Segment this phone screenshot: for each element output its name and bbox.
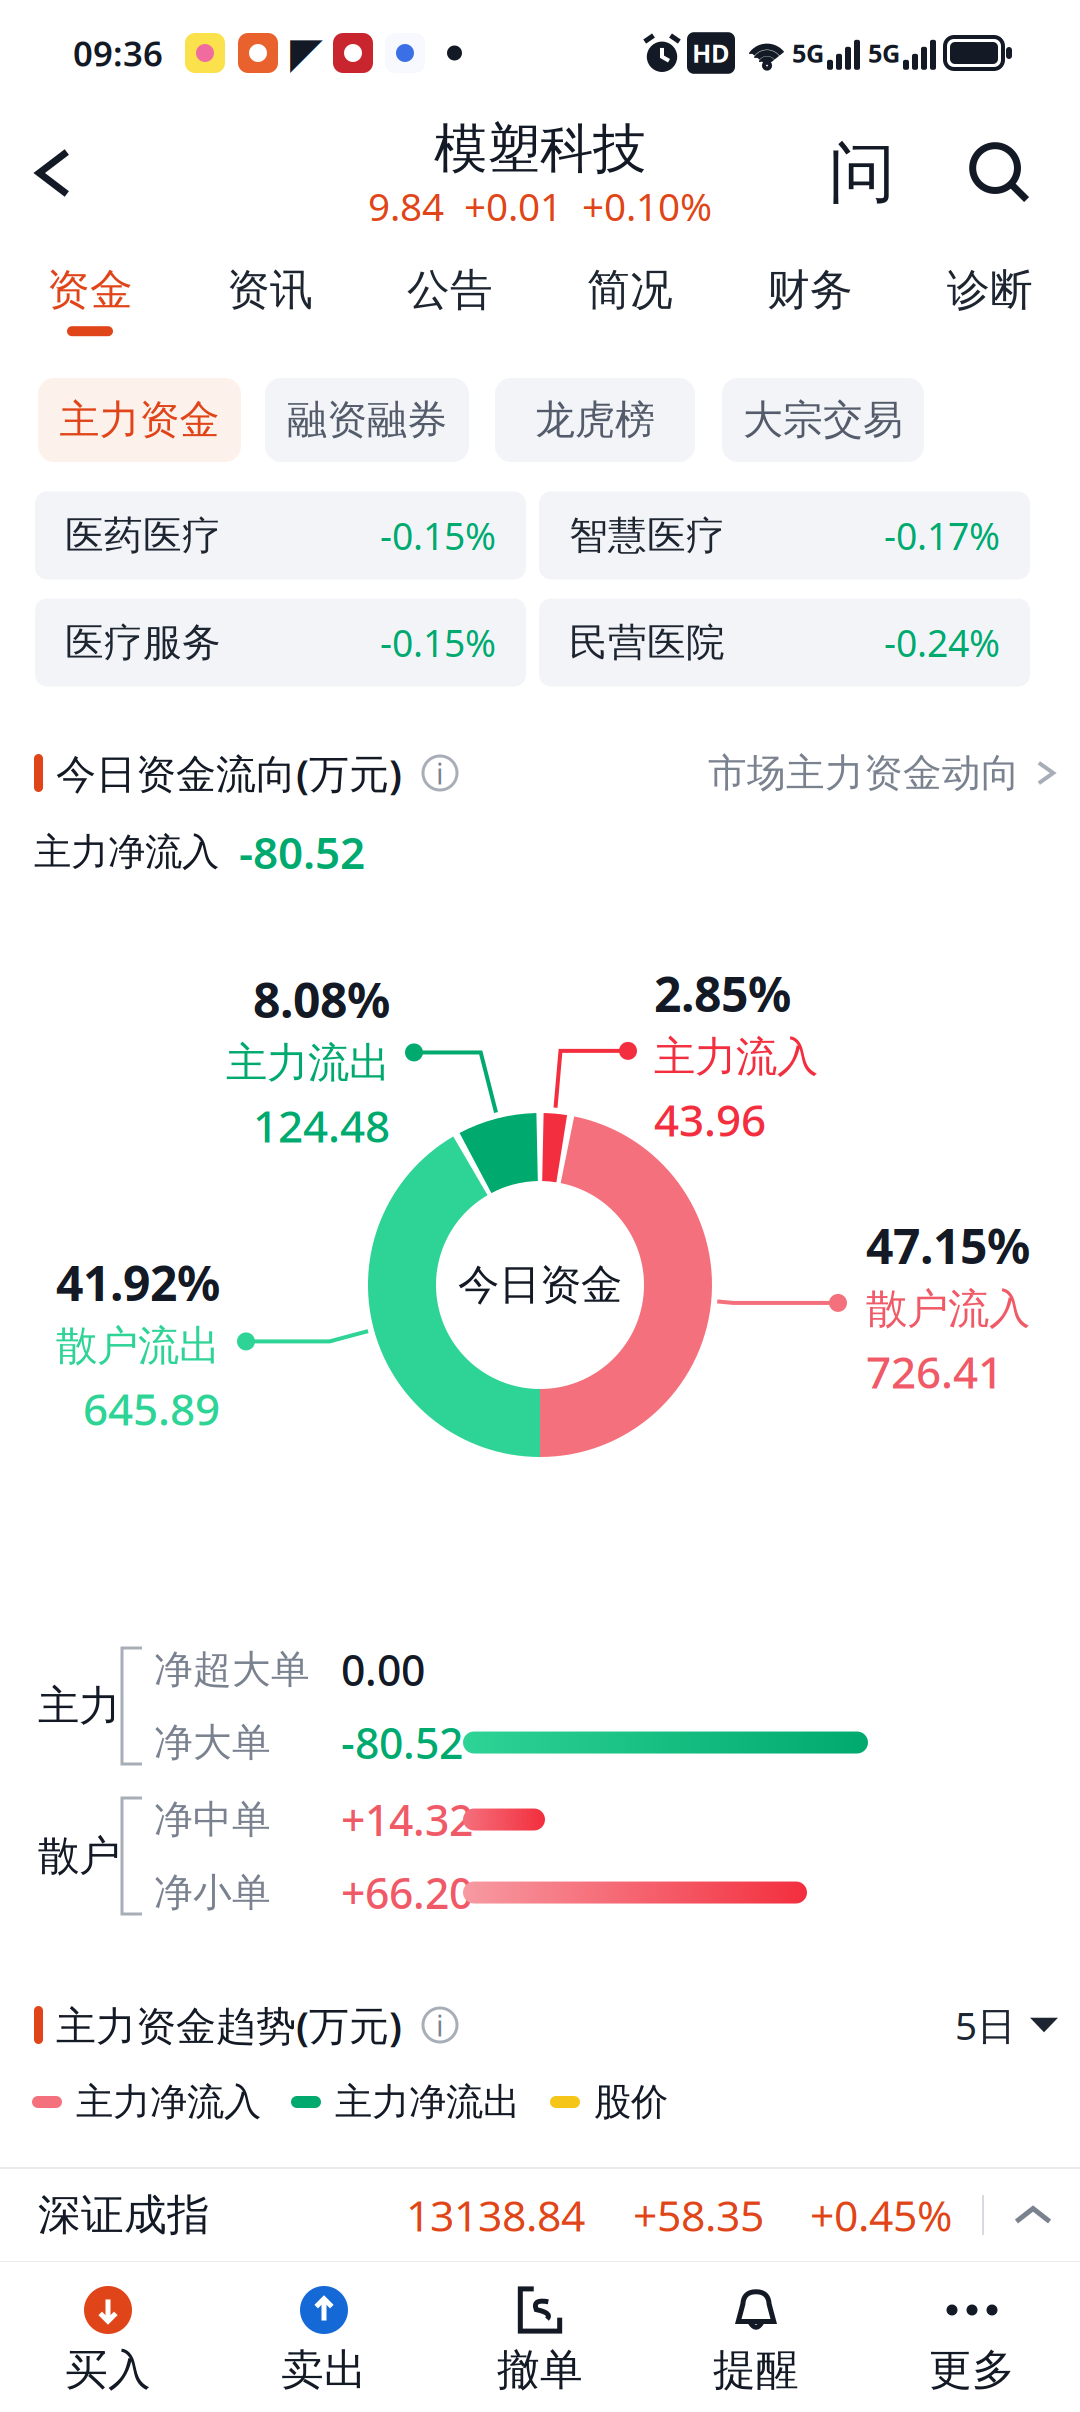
staticText: i: [436, 2005, 444, 2044]
staticText: 净小单: [154, 1869, 271, 1916]
staticText: 诊断: [947, 264, 1033, 316]
staticText: -0.24%: [884, 618, 1000, 667]
staticText: 主力流入: [654, 1032, 818, 1082]
staticText: 主力净流入: [76, 2079, 261, 2125]
button[interactable]: 主力资金: [38, 378, 241, 462]
button[interactable]: Search: [946, 113, 1054, 233]
staticText: 主力流出: [226, 1038, 390, 1088]
staticText: 726.41: [866, 1342, 1003, 1401]
button[interactable]: Back: [4, 112, 102, 234]
staticText: i: [436, 753, 444, 792]
staticText: HD: [692, 36, 730, 70]
staticText: 今日资金流向(万元): [56, 746, 402, 799]
button[interactable]: 公告: [360, 260, 540, 340]
staticText: 资金: [47, 264, 133, 316]
button[interactable]: 财务: [720, 260, 900, 340]
button[interactable]: 更多: [864, 2269, 1080, 2405]
button[interactable]: 深证成指: [0, 2168, 1080, 2262]
staticText: 9.84 +0.01 +0.10%: [368, 180, 712, 232]
staticText: 净大单: [154, 1719, 271, 1766]
staticText: 龙虎榜: [535, 395, 655, 444]
staticText: 散户流出: [56, 1321, 220, 1371]
button[interactable]: 资金: [0, 260, 180, 340]
staticText: 5日: [955, 1999, 1016, 2051]
staticText: 主力资金趋势(万元): [56, 1998, 402, 2051]
staticText: 43.96: [654, 1090, 766, 1149]
staticText: 撤单: [497, 2344, 583, 2396]
staticText: 13138.84: [406, 2187, 585, 2243]
staticText: -0.15%: [380, 511, 496, 560]
staticText: -0.15%: [380, 618, 496, 667]
staticText: 提醒: [713, 2344, 799, 2396]
staticText: 医药医疗: [65, 512, 221, 559]
button[interactable]: Ask: [808, 114, 916, 232]
staticText: 净超大单: [154, 1646, 310, 1693]
staticText: -80.52: [341, 1714, 463, 1771]
staticText: 模塑科技: [434, 116, 646, 182]
staticText: 财务: [767, 264, 853, 316]
staticText: 645.89: [83, 1379, 220, 1438]
staticText: 散户: [38, 1831, 120, 1881]
button[interactable]: 医疗服务: [35, 598, 526, 686]
staticText: 47.15%: [866, 1214, 1030, 1277]
staticText: 公告: [407, 264, 493, 316]
staticText: -80.52: [239, 823, 365, 881]
staticText: -0.17%: [884, 511, 1000, 560]
staticText: 主力净流出: [335, 2079, 520, 2125]
staticText: 124.48: [253, 1096, 390, 1155]
staticText: 民营医院: [569, 619, 725, 666]
staticText: +66.20: [341, 1864, 473, 1921]
button[interactable]: 大宗交易: [722, 378, 924, 462]
staticText: 市场主力资金动向: [708, 749, 1020, 797]
button[interactable]: 医药医疗: [35, 491, 526, 579]
staticText: 大宗交易: [743, 395, 903, 444]
button[interactable]: 民营医院: [539, 598, 1030, 686]
staticText: 5G: [792, 36, 824, 70]
staticText: 主力净流入: [34, 829, 219, 875]
staticText: 问: [828, 132, 895, 214]
staticText: 买入: [65, 2344, 151, 2396]
staticText: 卖出: [281, 2344, 367, 2396]
staticText: 股价: [594, 2079, 668, 2125]
staticText: 更多: [929, 2344, 1015, 2396]
staticText: 主力: [38, 1681, 120, 1731]
staticText: 深证成指: [38, 2189, 210, 2241]
staticText: 智慧医疗: [569, 512, 725, 559]
button[interactable]: 卖出: [216, 2269, 432, 2405]
button[interactable]: 提醒: [648, 2269, 864, 2405]
button[interactable]: 市场主力资金动向: [708, 749, 1058, 797]
staticText: 融资融券: [287, 395, 447, 444]
staticText: 5G: [868, 36, 900, 70]
button[interactable]: 5日: [955, 1999, 1058, 2051]
staticText: 简况: [587, 264, 673, 316]
button[interactable]: 诊断: [900, 260, 1080, 340]
staticText: 41.92%: [56, 1251, 220, 1314]
staticText: +14.32: [341, 1791, 473, 1848]
button[interactable]: 资讯: [180, 260, 360, 340]
staticText: 净中单: [154, 1796, 271, 1843]
button[interactable]: 龙虎榜: [495, 378, 695, 462]
staticText: 今日资金: [458, 1260, 622, 1310]
staticText: +0.45%: [810, 2187, 952, 2243]
staticText: 8.08%: [253, 968, 390, 1031]
staticText: 资讯: [227, 264, 313, 316]
staticText: 主力资金: [59, 395, 219, 444]
staticText: ◤: [290, 29, 323, 77]
staticText: 0.00: [341, 1641, 425, 1698]
button[interactable]: 买入: [0, 2269, 216, 2405]
staticText: 散户流入: [866, 1284, 1030, 1334]
button[interactable]: 撤单: [432, 2269, 648, 2405]
button[interactable]: 融资融券: [265, 378, 469, 462]
button[interactable]: 简况: [540, 260, 720, 340]
button[interactable]: 智慧医疗: [539, 491, 1030, 579]
staticText: 医疗服务: [65, 619, 221, 666]
staticText: 2.85%: [654, 962, 791, 1025]
staticText: 09:36: [73, 30, 163, 76]
staticText: +58.35: [633, 2187, 764, 2243]
